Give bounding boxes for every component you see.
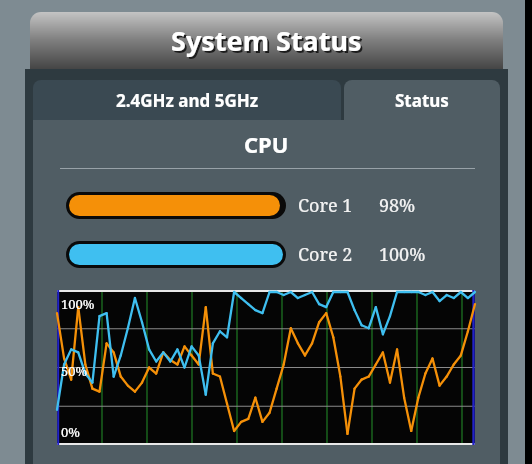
staticText: System Status: [171, 22, 362, 59]
staticText: Core 1: [298, 193, 353, 218]
staticText: 100%: [61, 295, 95, 313]
staticText: Core 2: [298, 242, 353, 267]
button[interactable]: Status: [344, 80, 500, 120]
staticText: 98%: [379, 193, 416, 218]
staticText: 2.4GHz and 5GHz: [116, 89, 259, 112]
other: CPU usage chart: [57, 290, 475, 445]
button[interactable]: Core 2: [66, 239, 475, 269]
staticText: Status: [395, 89, 449, 112]
button[interactable]: 2.4GHz and 5GHz: [33, 80, 341, 120]
staticText: CPU: [244, 129, 289, 159]
staticText: 100%: [379, 242, 426, 267]
staticText: 50%: [61, 362, 88, 380]
staticText: System Status: [173, 24, 364, 61]
staticText: 0%: [61, 423, 80, 441]
button[interactable]: Core 1: [66, 190, 475, 220]
